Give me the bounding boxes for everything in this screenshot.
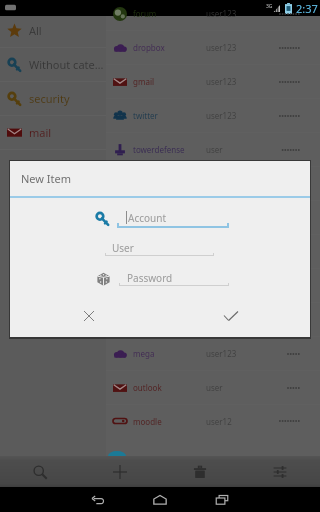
button[interactable]: forum xyxy=(106,0,320,30)
staticText: twitter xyxy=(133,110,158,121)
staticText: user12 xyxy=(206,314,232,325)
button[interactable]: linkedin xyxy=(106,269,320,302)
staticText: user1 xyxy=(206,280,228,291)
staticText: linkedin xyxy=(133,280,163,291)
staticText: user123 xyxy=(206,76,237,87)
button[interactable]: Back xyxy=(67,487,129,512)
staticText: mega xyxy=(133,348,155,359)
button[interactable]: Settings xyxy=(240,456,320,487)
staticText: dropbox xyxy=(133,42,165,53)
button[interactable]: gmail xyxy=(106,65,320,98)
button[interactable]: Without categ… xyxy=(0,48,106,81)
staticText: security xyxy=(29,91,70,106)
staticText: user123 xyxy=(206,42,237,53)
staticText: user xyxy=(206,382,223,393)
staticText: towerdefense xyxy=(133,144,185,155)
staticText: 2:37 xyxy=(296,1,318,16)
button[interactable]: mega xyxy=(106,337,320,370)
button[interactable]: towerdefense xyxy=(106,133,320,166)
staticText: moodle xyxy=(133,416,162,427)
button[interactable]: dropbox xyxy=(106,31,320,64)
staticText: mail xyxy=(29,125,52,140)
button[interactable]: outlook xyxy=(106,371,320,404)
staticText: github xyxy=(133,212,158,223)
staticText: Account xyxy=(128,211,167,225)
button[interactable]: Home xyxy=(129,487,191,512)
staticText: Without categ… xyxy=(29,57,106,72)
button[interactable]: amazon xyxy=(106,235,320,268)
staticText: forum xyxy=(133,8,157,19)
button[interactable]: mail xyxy=(0,116,106,149)
staticText: gmail xyxy=(133,76,155,87)
staticText: user123 xyxy=(206,110,237,121)
button[interactable]: lastpass xyxy=(106,167,320,200)
button[interactable]: Cancel xyxy=(49,299,129,333)
staticText: user123 xyxy=(206,8,237,19)
staticText: outlook xyxy=(133,382,162,393)
staticText: All xyxy=(29,23,42,38)
staticText: New Item xyxy=(21,171,72,186)
staticText: user12 xyxy=(206,246,232,257)
staticText: user123 xyxy=(206,348,237,359)
button[interactable]: Recents xyxy=(191,487,253,512)
button[interactable]: Confirm xyxy=(191,299,271,333)
button[interactable]: All xyxy=(0,14,106,47)
button[interactable]: skype xyxy=(106,303,320,336)
staticText: user xyxy=(206,144,223,155)
button[interactable]: Search xyxy=(0,456,80,487)
button[interactable]: twitter xyxy=(106,99,320,132)
staticText: amazon xyxy=(133,246,163,257)
staticText: 3G xyxy=(266,3,273,10)
button[interactable]: Delete xyxy=(160,456,240,487)
button[interactable]: security xyxy=(0,82,106,115)
button[interactable]: Add xyxy=(80,456,160,487)
button[interactable]: moodle xyxy=(106,405,320,437)
staticText: User xyxy=(112,241,134,255)
button[interactable]: github xyxy=(106,201,320,234)
staticText: Password xyxy=(127,271,173,285)
staticText: user12 xyxy=(206,416,232,427)
